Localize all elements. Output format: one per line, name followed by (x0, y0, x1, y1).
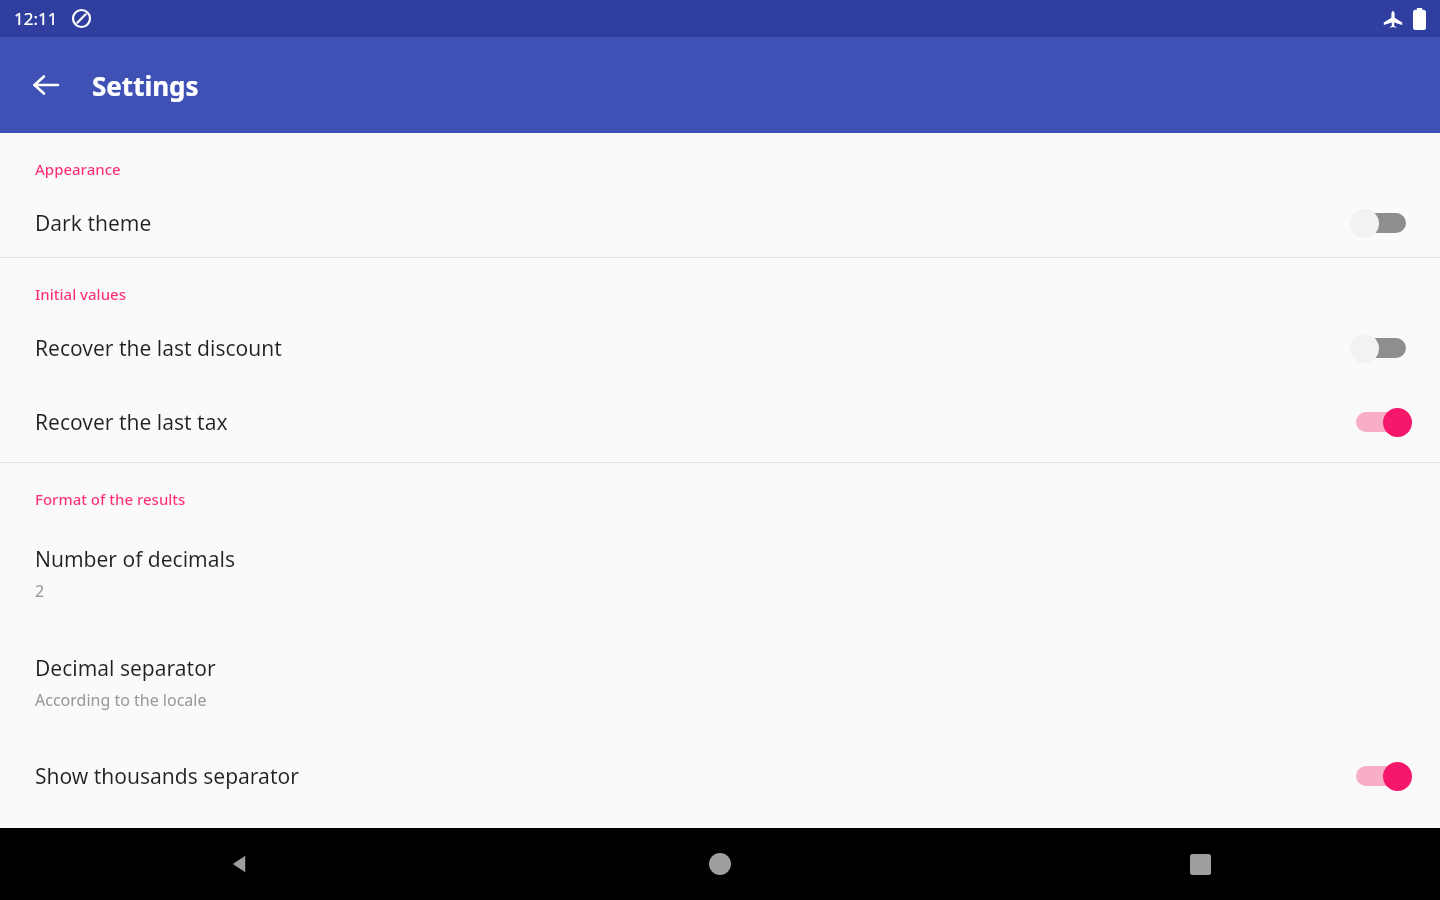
button[interactable]: Back (0, 828, 480, 900)
button[interactable]: Dark theme (0, 189, 1440, 257)
staticText: Recover the last discount (35, 334, 282, 363)
staticText: 12:11 (14, 7, 58, 30)
staticText: Dark theme (35, 209, 152, 238)
button[interactable]: Home (480, 828, 960, 900)
button[interactable]: Recover the last tax (0, 382, 1440, 462)
staticText: Show thousands separator (35, 762, 299, 791)
button[interactable]: Number of decimals (0, 519, 1440, 628)
staticText: Settings (92, 68, 199, 103)
staticText: Format of the results (35, 489, 186, 509)
staticText: Decimal separator (35, 654, 216, 683)
button[interactable]: Back (22, 61, 70, 109)
staticText: Number of decimals (35, 545, 236, 574)
staticText: Recover the last tax (35, 408, 228, 437)
staticText: Appearance (35, 159, 121, 179)
button[interactable]: Recent apps (960, 828, 1440, 900)
staticText: Initial values (35, 284, 126, 304)
staticText: 2 (35, 580, 45, 602)
staticText: According to the locale (35, 689, 207, 711)
button[interactable]: Show thousands separator (0, 737, 1440, 815)
button[interactable]: Recover the last discount (0, 314, 1440, 382)
button[interactable]: Decimal separator (0, 628, 1440, 737)
